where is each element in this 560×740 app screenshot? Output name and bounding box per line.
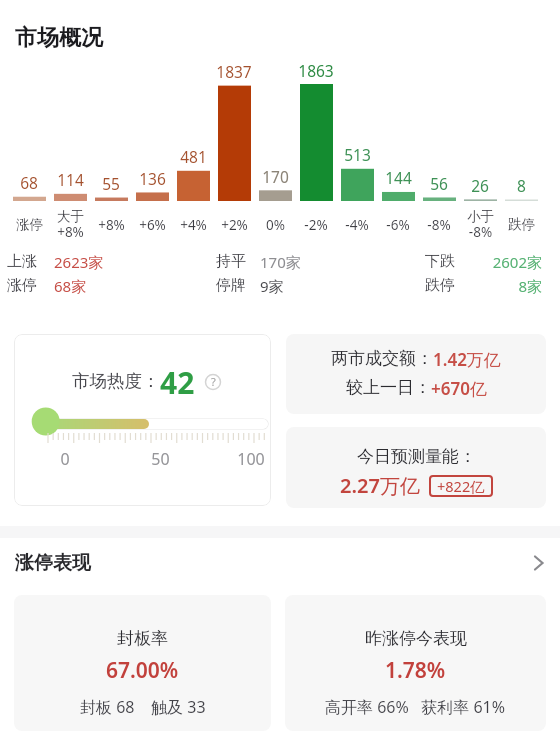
staticText: +822亿 [437,476,485,496]
staticText: 2.27万亿 [340,472,420,499]
button[interactable] [14,334,271,506]
staticText: 1837 [216,61,252,82]
staticText: 0% [266,216,285,234]
staticText: 上涨 [7,252,37,271]
staticText: 50 [151,448,170,470]
staticText: -4% [345,216,369,234]
staticText: 55 [102,173,120,194]
staticText: 67.00% [106,656,179,685]
button[interactable]: 两市成交额： [286,334,546,414]
staticText: +6% [139,216,166,234]
staticText: +4% [180,216,207,234]
staticText: 513 [344,144,371,165]
staticText: 今日预测量能： [357,446,476,467]
staticText: 68家 [54,276,87,296]
staticText: 114 [57,169,84,190]
staticText: 停牌 [216,276,246,295]
staticText: 8 [517,175,526,196]
staticText: 56 [430,173,448,194]
staticText: +2% [221,216,248,234]
staticText: 1863 [298,60,334,81]
staticText: ? [211,374,216,389]
staticText: -8% [427,216,451,234]
staticText: -2% [304,216,328,234]
staticText: 昨涨停今表现 [365,628,467,649]
button[interactable]: 今日预测量能： [286,427,546,508]
button[interactable]: 涨停表现 [15,548,545,578]
staticText: 2602家 [492,252,542,272]
staticText: 170家 [260,252,301,272]
staticText: +8% [98,216,125,234]
staticText: 2623家 [54,252,104,272]
staticText: 26 [471,175,489,196]
staticText: 136 [139,168,166,189]
staticText: 涨停 [16,216,43,233]
staticText: 100 [237,448,265,470]
staticText: 9家 [260,276,284,296]
staticText: 市场热度： [72,370,160,392]
staticText: 封板率 [117,628,168,649]
staticText: 跌停 [508,216,535,233]
staticText: 1.78% [385,656,446,685]
staticText: 封板 68 触及 33 [80,696,206,718]
staticText: 高开率 66% 获利率 61% [325,696,506,718]
staticText: 涨停表现 [15,551,91,575]
staticText: 跌停 [425,276,455,295]
staticText: 持平 [216,252,246,271]
staticText: 小于 -8% [467,208,494,241]
staticText: 涨停 [7,276,37,295]
button[interactable]: 封板率 [14,595,271,731]
staticText: 市场概况 [15,24,103,52]
staticText: 0 [60,448,70,470]
staticText: 144 [385,167,412,188]
staticText: 481 [180,146,207,167]
staticText: +670亿 [431,377,487,400]
button[interactable]: 昨涨停今表现 [285,595,546,731]
staticText: 较上一日： [346,377,431,398]
staticText: 8家 [518,276,542,296]
staticText: 1.42万亿 [433,348,501,371]
staticText: 下跌 [425,252,455,271]
staticText: -6% [386,216,410,234]
staticText: 42 [160,362,195,403]
staticText: 68 [20,172,38,193]
staticText: 大于 +8% [57,208,84,241]
staticText: 170 [262,166,289,187]
staticText: 两市成交额： [331,348,433,369]
